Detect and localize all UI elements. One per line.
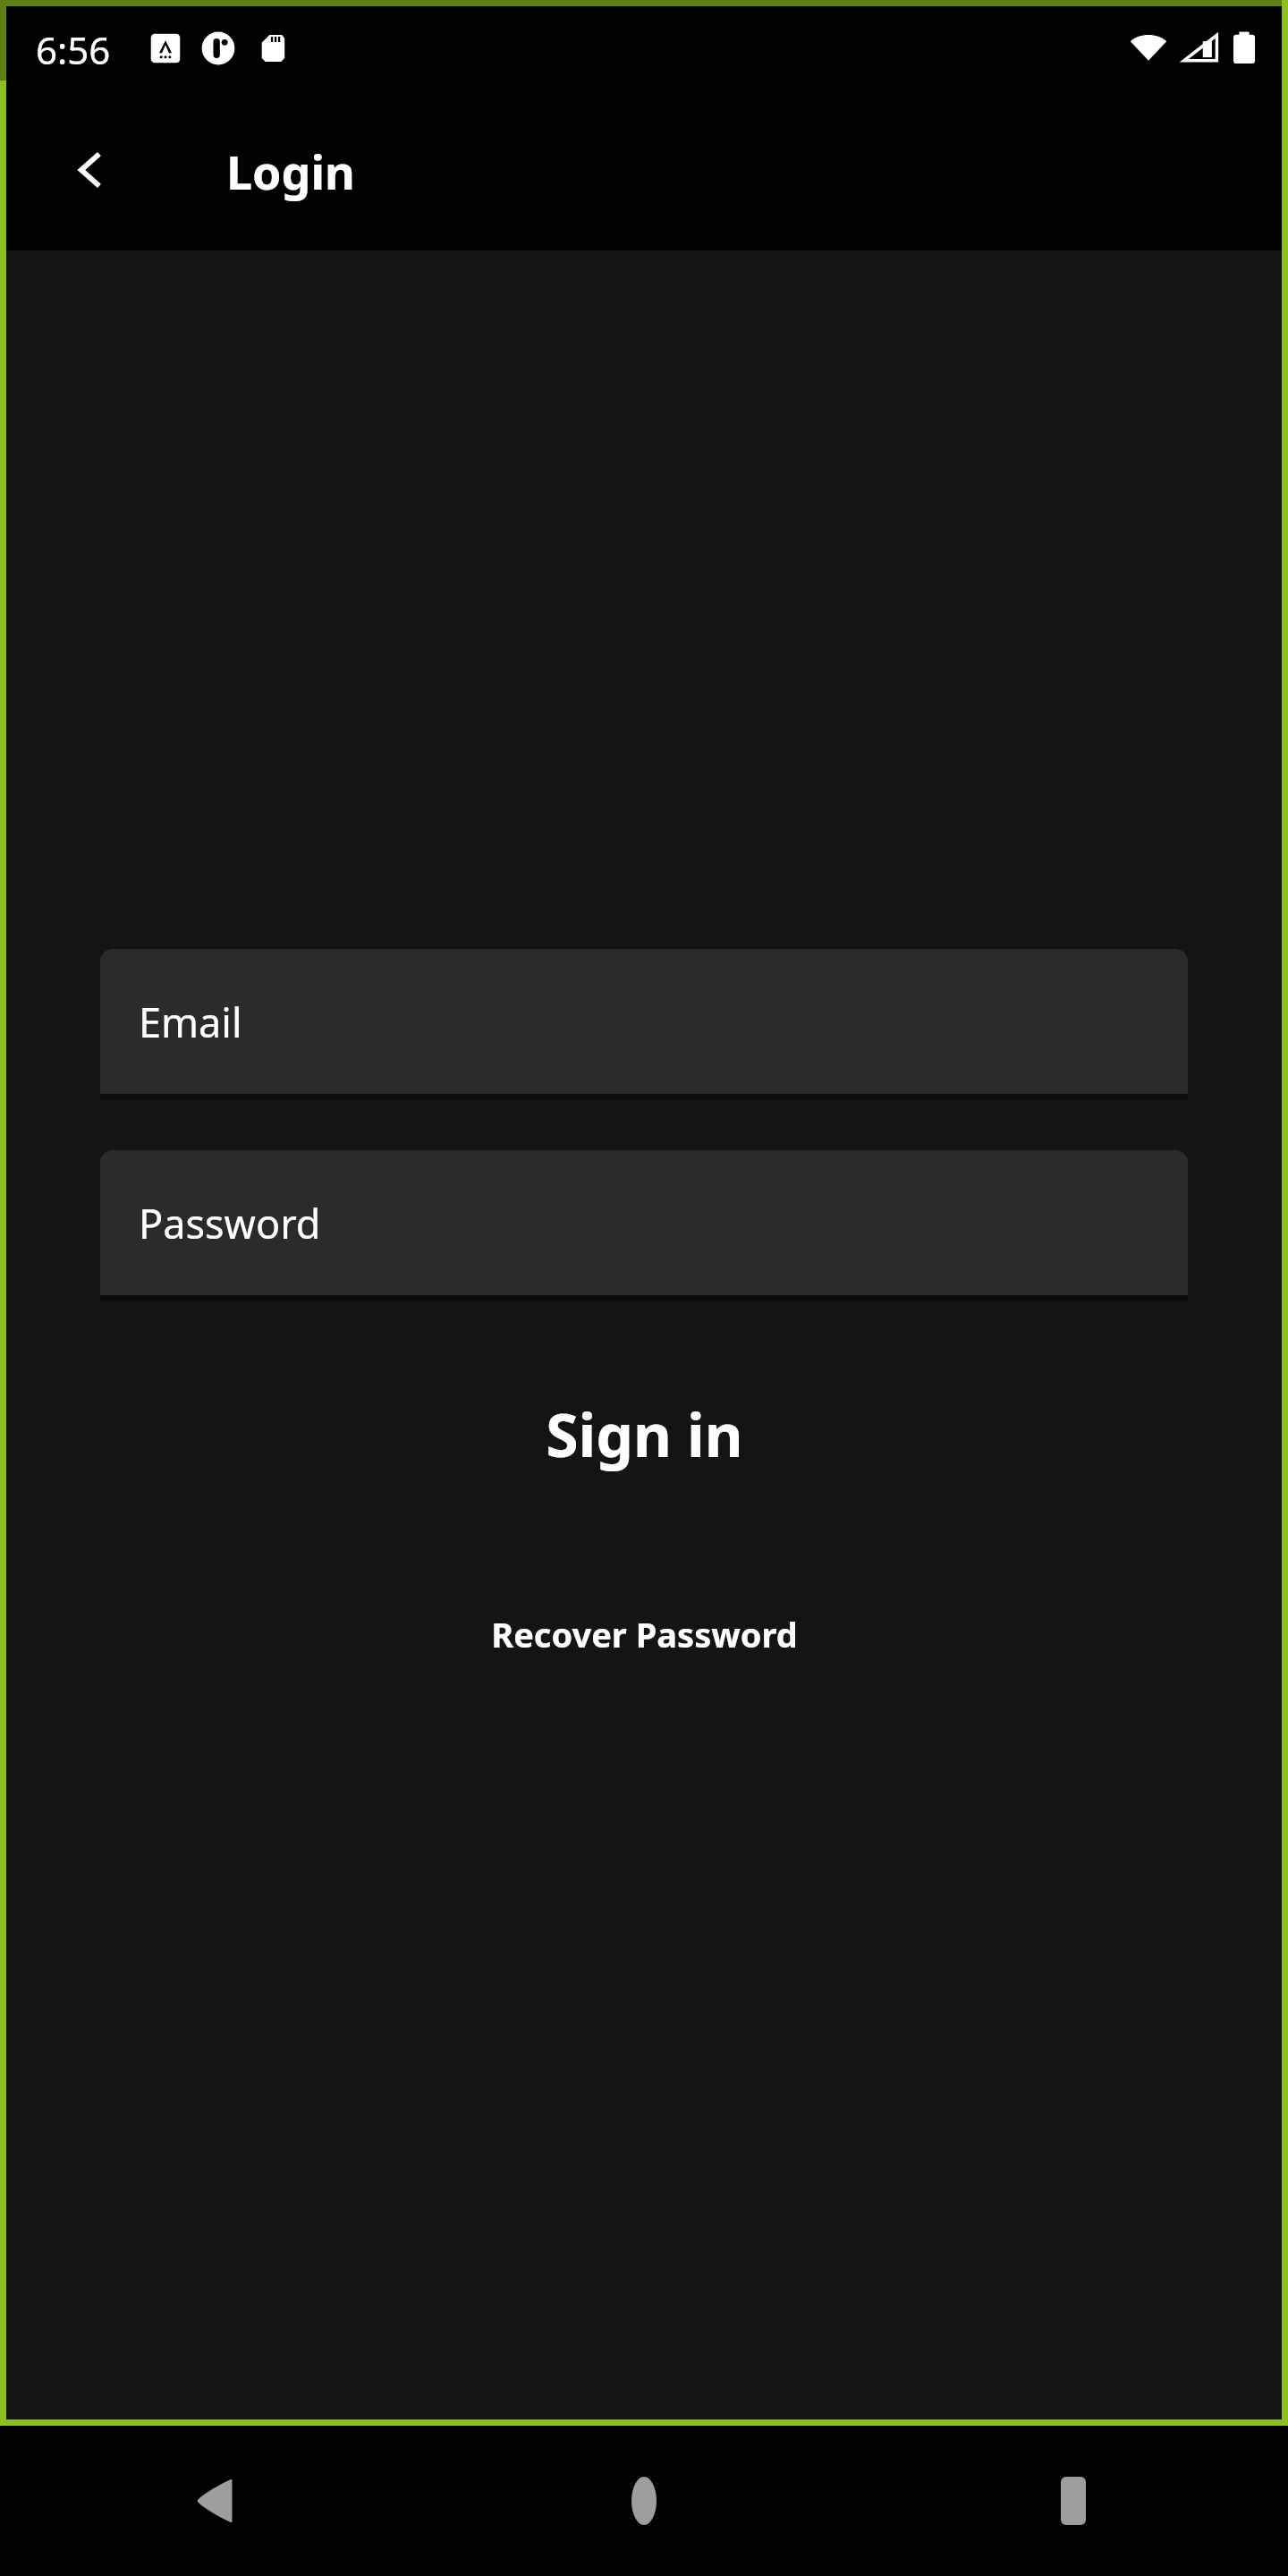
staticText: Login <box>226 140 355 203</box>
button[interactable]: Recent apps <box>859 2426 1288 2576</box>
staticText: Sign in <box>546 1394 743 1474</box>
staticText: Email <box>139 995 242 1049</box>
button[interactable]: Password <box>100 1150 1188 1301</box>
button[interactable]: Sign in <box>6 1380 1282 1487</box>
button[interactable]: Home <box>429 2426 859 2576</box>
staticText: 6:56 <box>36 24 111 75</box>
button[interactable]: Email <box>100 949 1188 1100</box>
button[interactable]: Recover Password <box>6 1598 1282 1670</box>
staticText: Password <box>139 1196 321 1250</box>
button[interactable]: Back <box>42 121 140 219</box>
button[interactable]: Back <box>0 2426 429 2576</box>
staticText: Recover Password <box>491 1611 798 1657</box>
